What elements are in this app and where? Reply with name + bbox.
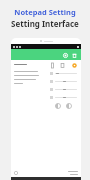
button[interactable]: Contrast <box>66 103 72 109</box>
staticText: Setting Interface <box>11 18 79 29</box>
button[interactable] <box>50 88 77 91</box>
button[interactable]: Menu <box>14 171 18 175</box>
button[interactable]: Add note <box>63 53 68 58</box>
button[interactable] <box>50 72 77 75</box>
button[interactable]: Background <box>60 63 65 68</box>
staticText: Notepad Setting <box>14 7 76 17</box>
button[interactable] <box>50 80 77 83</box>
button[interactable] <box>50 96 77 99</box>
button[interactable]: Delete <box>72 53 77 58</box>
button[interactable]: Settings <box>72 63 77 68</box>
button[interactable]: Brightness <box>55 103 61 109</box>
button[interactable]: Text style <box>50 63 55 68</box>
